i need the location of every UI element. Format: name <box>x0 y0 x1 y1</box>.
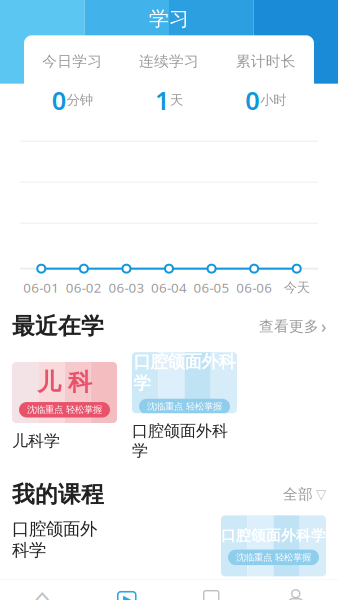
button[interactable]: 全部 <box>283 485 326 503</box>
staticText: 查看更多 <box>259 317 319 335</box>
button[interactable]: 口腔颌面外科学 <box>0 518 338 573</box>
staticText: 沈临重点 轻松掌握 <box>147 401 222 412</box>
staticText: 06-04 <box>151 279 187 296</box>
button[interactable]: ⌂ <box>0 584 84 600</box>
staticText: 沈临重点 轻松掌握 <box>236 552 311 563</box>
staticText: 06-02 <box>66 279 102 296</box>
staticText: 连续学习 <box>139 52 199 70</box>
staticText: 最近在学 <box>12 312 104 340</box>
staticText: 06-01 <box>23 279 59 296</box>
staticText: 沈临重点 轻松掌握 <box>27 404 102 415</box>
button[interactable]: 儿 科 <box>12 362 117 451</box>
staticText: 今天 <box>284 279 310 296</box>
staticText: ▽ <box>316 487 326 502</box>
staticText: 学习 <box>149 7 189 31</box>
staticText: 口腔颌面外科学 <box>133 351 235 394</box>
staticText: 分钟 <box>67 92 93 108</box>
staticText: 0 <box>52 83 66 117</box>
staticText: 儿科学 <box>12 431 60 451</box>
button[interactable]: 我的 <box>253 584 338 600</box>
staticText: 口腔颌面外科学 <box>132 421 228 460</box>
staticText: 0 <box>245 83 259 117</box>
staticText: 口腔颌面外科学 <box>221 527 326 545</box>
staticText: ⌂ <box>34 584 51 600</box>
button[interactable]: 查看更多 <box>259 315 326 338</box>
staticText: 06-05 <box>194 279 230 296</box>
button[interactable]: ▶ <box>84 584 169 600</box>
staticText: 06-03 <box>108 279 144 296</box>
staticText: 我的课程 <box>12 480 104 508</box>
staticText: 儿 科 <box>37 368 92 397</box>
staticText: 今日学习 <box>42 52 102 70</box>
button[interactable]: 口腔颌面外科学 <box>132 352 237 460</box>
staticText: 全部 <box>283 485 313 503</box>
button[interactable]: 题库 <box>169 584 253 600</box>
staticText: 累计时长 <box>236 52 296 70</box>
staticText: 06-06 <box>236 279 272 296</box>
staticText: 天 <box>170 92 183 108</box>
staticText: 1 <box>155 83 169 117</box>
staticText: 小时 <box>260 92 286 108</box>
staticText: › <box>321 315 326 338</box>
staticText: 口腔颌面外科学 <box>12 518 97 561</box>
staticText: ▶ <box>123 593 131 600</box>
